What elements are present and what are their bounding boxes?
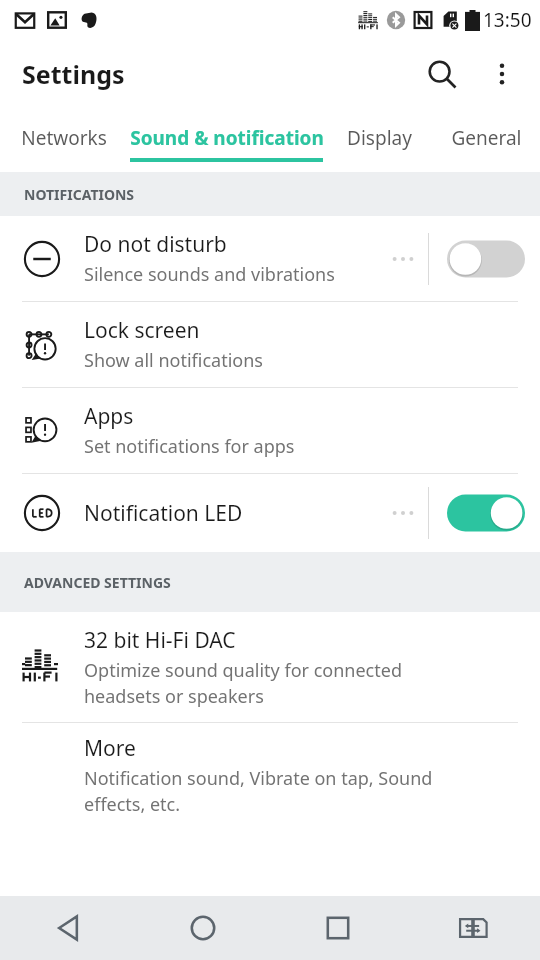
- button[interactable]: Do not disturb: [0, 216, 540, 301]
- staticText: Notification LED: [84, 499, 243, 528]
- staticText: ADVANCED SETTINGS: [24, 573, 171, 592]
- staticText: NOTIFICATIONS: [24, 185, 135, 204]
- staticText: Networks: [21, 125, 107, 151]
- staticText: Silence sounds and vibrations: [84, 262, 335, 287]
- button[interactable]: Search: [418, 50, 466, 98]
- button[interactable]: More: [0, 723, 540, 827]
- staticText: Display: [347, 125, 412, 151]
- staticText: Sound & notification: [130, 125, 324, 151]
- button[interactable]: Back: [0, 896, 135, 960]
- button[interactable]: Toggle off: [447, 239, 525, 279]
- staticText: Optimize sound quality for connected hea…: [84, 658, 402, 709]
- button[interactable]: Sound & notification: [127, 108, 326, 172]
- button[interactable]: More options: [478, 50, 526, 98]
- staticText: 13:50: [483, 7, 532, 33]
- staticText: Settings: [22, 57, 125, 91]
- button[interactable]: Toggle on: [447, 493, 525, 533]
- staticText: Set notifications for apps: [84, 434, 295, 459]
- staticText: Apps: [84, 402, 134, 431]
- button[interactable]: Apps: [0, 388, 540, 473]
- button[interactable]: Notification LED: [0, 474, 540, 552]
- button[interactable]: Dual window: [405, 896, 540, 960]
- staticText: General: [451, 125, 522, 151]
- staticText: Notification sound, Vibrate on tap, Soun…: [84, 766, 433, 817]
- button[interactable]: Networks: [0, 108, 127, 172]
- button[interactable]: 32 bit Hi-Fi DAC: [0, 612, 540, 722]
- staticText: 32 bit Hi-Fi DAC: [84, 626, 236, 655]
- button[interactable]: Lock screen: [0, 302, 540, 387]
- staticText: More: [84, 734, 136, 763]
- button[interactable]: Recents: [270, 896, 405, 960]
- staticText: Show all notifications: [84, 348, 263, 373]
- staticText: Lock screen: [84, 316, 200, 345]
- button[interactable]: General: [432, 108, 540, 172]
- button[interactable]: Display: [326, 108, 432, 172]
- button[interactable]: Home: [135, 896, 270, 960]
- staticText: Do not disturb: [84, 230, 227, 259]
